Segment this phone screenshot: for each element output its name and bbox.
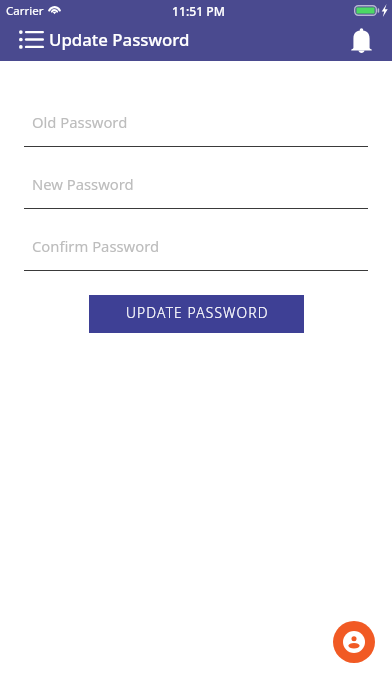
staticText: Carrier — [6, 3, 44, 19]
button[interactable]: Old Password — [24, 112, 368, 147]
button[interactable]: New Password — [24, 174, 368, 209]
staticText: New Password — [32, 174, 134, 194]
button[interactable]: Confirm Password — [24, 236, 368, 271]
button[interactable]: Account — [333, 621, 375, 663]
button[interactable]: Notifications — [345, 24, 377, 56]
button[interactable]: UPDATE PASSWORD — [89, 295, 304, 333]
staticText: Confirm Password — [32, 236, 160, 256]
button[interactable]: Menu — [7, 22, 43, 58]
staticText: Old Password — [32, 112, 128, 132]
staticText: 11:51 PM — [172, 3, 225, 20]
staticText: Update Password — [49, 28, 190, 51]
staticText: UPDATE PASSWORD — [126, 303, 269, 322]
